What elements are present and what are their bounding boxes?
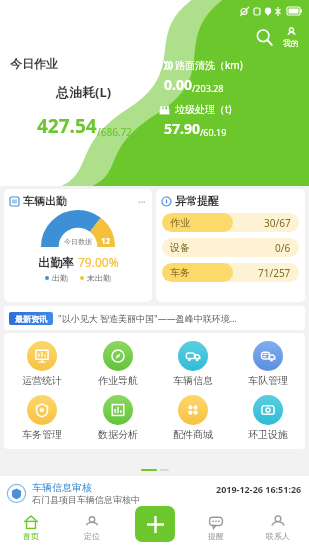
staticText: 车辆信息审核 — [32, 481, 92, 494]
button[interactable]: 车务管理 — [4, 393, 80, 443]
staticText: ··· — [138, 195, 146, 207]
button[interactable]: 作业 — [162, 213, 299, 232]
staticText: 设备 — [170, 241, 190, 254]
staticText: 垃级处理（t) — [175, 102, 232, 116]
button[interactable]: 车辆信息审核 — [0, 476, 309, 510]
button[interactable]: 异常提醒 — [156, 189, 305, 302]
button[interactable]: 环卫设施 — [230, 393, 305, 443]
staticText: 我的 — [283, 38, 299, 48]
button[interactable]: 车务 — [162, 263, 299, 282]
staticText: 作业导航 — [98, 374, 138, 387]
button[interactable]: 车队管理 — [230, 339, 305, 389]
button[interactable]: 数据分析 — [80, 393, 155, 443]
button[interactable]: 联系人 — [247, 510, 309, 550]
button[interactable]: 首页 — [0, 510, 61, 550]
staticText: 车辆信息 — [173, 374, 213, 387]
button[interactable]: 定位 — [61, 510, 123, 550]
staticText: 环卫设施 — [248, 428, 288, 441]
staticText: 异常提醒 — [175, 194, 219, 208]
staticText: 车辆出勤 — [23, 194, 67, 208]
staticText: "以小见大 智造美丽中国"——盈峰中联环境… — [58, 312, 237, 324]
staticText: 配件商城 — [173, 428, 213, 441]
button[interactable]: 设备 — [162, 238, 299, 257]
staticText: 今日作业 — [10, 56, 58, 71]
staticText: 45 — [73, 225, 84, 237]
staticText: 最新资讯 — [15, 314, 47, 324]
staticText: 石门县项目车辆信息审核中 — [32, 494, 140, 505]
staticText: 车队管理 — [248, 374, 288, 387]
staticText: 30/67 — [264, 216, 291, 230]
staticText: 提醒 — [208, 531, 224, 541]
staticText: 0/6 — [275, 241, 291, 255]
button[interactable]: 我的 — [281, 27, 301, 48]
staticText: 定位 — [84, 531, 100, 541]
staticText: 总油耗(L) — [56, 83, 112, 101]
button[interactable]: 提醒 — [185, 510, 247, 550]
staticText: 未出勤 — [87, 273, 111, 283]
button[interactable]: 配件商城 — [155, 393, 230, 443]
staticText: 联系人 — [266, 531, 290, 541]
staticText: 运营统计 — [22, 374, 62, 387]
staticText: 79.00% — [78, 254, 119, 270]
staticText: 出勤率 — [38, 254, 78, 270]
staticText: 今日数据 — [64, 237, 92, 246]
button[interactable]: 车辆出勤 — [4, 189, 152, 302]
button[interactable]: 车辆信息 — [155, 339, 230, 389]
staticText: 71/257 — [258, 266, 291, 280]
button[interactable]: 最新资讯 — [4, 306, 305, 330]
staticText: 数据分析 — [98, 428, 138, 441]
staticText: /686.72 — [97, 125, 132, 139]
staticText: 作业 — [170, 216, 190, 229]
staticText: 12 — [101, 235, 111, 246]
staticText: 出勤 — [52, 273, 68, 283]
staticText: /203.28 — [192, 82, 224, 94]
staticText: 首页 — [23, 531, 39, 541]
staticText: 车务管理 — [22, 428, 62, 441]
staticText: 57.90 — [164, 119, 200, 138]
button[interactable]: 作业导航 — [80, 339, 155, 389]
staticText: 2019-12-26 16:51:26 — [216, 483, 302, 495]
staticText: 车务 — [170, 266, 190, 279]
staticText: 427.54 — [37, 113, 97, 139]
button[interactable]: Search — [251, 24, 277, 50]
button[interactable]: 运营统计 — [4, 339, 80, 389]
staticText: 0.00 — [164, 75, 192, 94]
staticText: 路面清洗（km) — [175, 58, 243, 72]
button[interactable]: Add — [135, 506, 175, 542]
staticText: /60.19 — [200, 126, 227, 138]
